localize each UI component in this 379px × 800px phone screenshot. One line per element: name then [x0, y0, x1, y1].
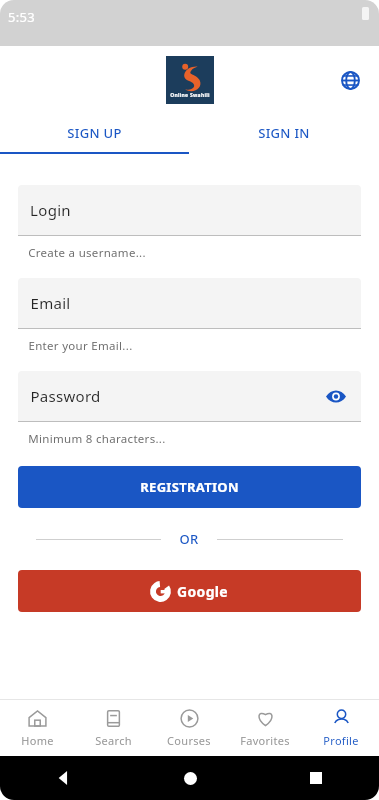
staticText: REGISTRATION — [140, 478, 239, 496]
button[interactable]: Profile — [303, 700, 379, 756]
staticText: Create a username... — [28, 245, 146, 261]
staticText: Home — [21, 733, 54, 748]
staticText: Search — [95, 733, 132, 748]
staticText: Email — [30, 293, 71, 313]
button[interactable]: Login — [18, 185, 361, 235]
button[interactable]: Search — [75, 700, 151, 756]
staticText: 5:53 — [8, 8, 35, 26]
button[interactable]: Email — [18, 278, 361, 328]
staticText: Minimum 8 characters... — [28, 431, 166, 447]
staticText: Profile — [323, 733, 359, 748]
staticText: Login — [30, 200, 71, 220]
button[interactable]: Show password — [323, 383, 349, 409]
staticText: Online Swahili — [170, 92, 210, 99]
staticText: Courses — [167, 733, 211, 748]
button[interactable]: Courses — [151, 700, 227, 756]
button[interactable]: Online Swahili — [166, 56, 214, 104]
staticText: OR — [179, 530, 199, 548]
button[interactable]: REGISTRATION — [18, 466, 361, 508]
staticText: Google — [177, 582, 228, 601]
button[interactable]: Google — [18, 570, 361, 612]
button[interactable]: Language — [335, 65, 365, 95]
staticText: SIGN IN — [258, 124, 310, 142]
button[interactable]: SIGN IN — [189, 114, 379, 152]
button[interactable]: SIGN UP — [0, 114, 189, 152]
button[interactable]: Password — [18, 371, 361, 421]
staticText: Favorites — [240, 733, 290, 748]
button[interactable]: Favorites — [227, 700, 303, 756]
staticText: SIGN UP — [67, 124, 122, 142]
button[interactable]: Home — [0, 700, 75, 756]
staticText: Password — [30, 386, 101, 406]
staticText: Enter your Email... — [28, 338, 133, 354]
